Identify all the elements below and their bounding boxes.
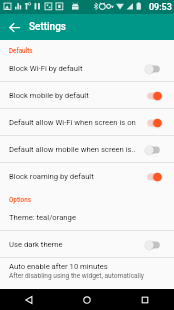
button[interactable]: Default allow mobile when screen is.. xyxy=(0,136,174,163)
button[interactable]: Block Wi-Fi by default xyxy=(0,55,174,82)
button[interactable]: Default allow Wi-Fi when screen is on xyxy=(0,109,174,136)
button[interactable]: Block roaming by default xyxy=(0,163,174,190)
staticText: After disabling using the widget, automa… xyxy=(9,272,144,280)
button[interactable]: Theme: teal/orange xyxy=(0,204,174,231)
button[interactable]: Use dark theme xyxy=(0,231,174,258)
button[interactable]: Block mobile by default xyxy=(0,82,174,109)
staticText: Auto enable after 10 minutes xyxy=(9,262,108,271)
staticText: 09:53 xyxy=(149,2,172,13)
staticText: Defaults xyxy=(9,47,33,54)
staticText: Block mobile by default xyxy=(9,91,142,100)
staticText: Block roaming by default xyxy=(9,172,142,181)
staticText: Theme: teal/orange xyxy=(9,213,76,222)
button[interactable]: Back xyxy=(0,289,58,310)
button[interactable]: Home xyxy=(58,289,116,310)
button[interactable]: Navigate up xyxy=(0,14,29,40)
button[interactable]: Recent apps xyxy=(116,289,174,310)
staticText: Settings xyxy=(29,21,67,33)
staticText: Default allow Wi-Fi when screen is on xyxy=(9,118,142,127)
staticText: Use dark theme xyxy=(9,240,142,249)
staticText: Block Wi-Fi by default xyxy=(9,64,142,73)
button[interactable]: Auto enable after 10 minutes xyxy=(0,258,174,289)
staticText: Default allow mobile when screen is.. xyxy=(9,145,142,154)
staticText: Options xyxy=(9,196,31,203)
